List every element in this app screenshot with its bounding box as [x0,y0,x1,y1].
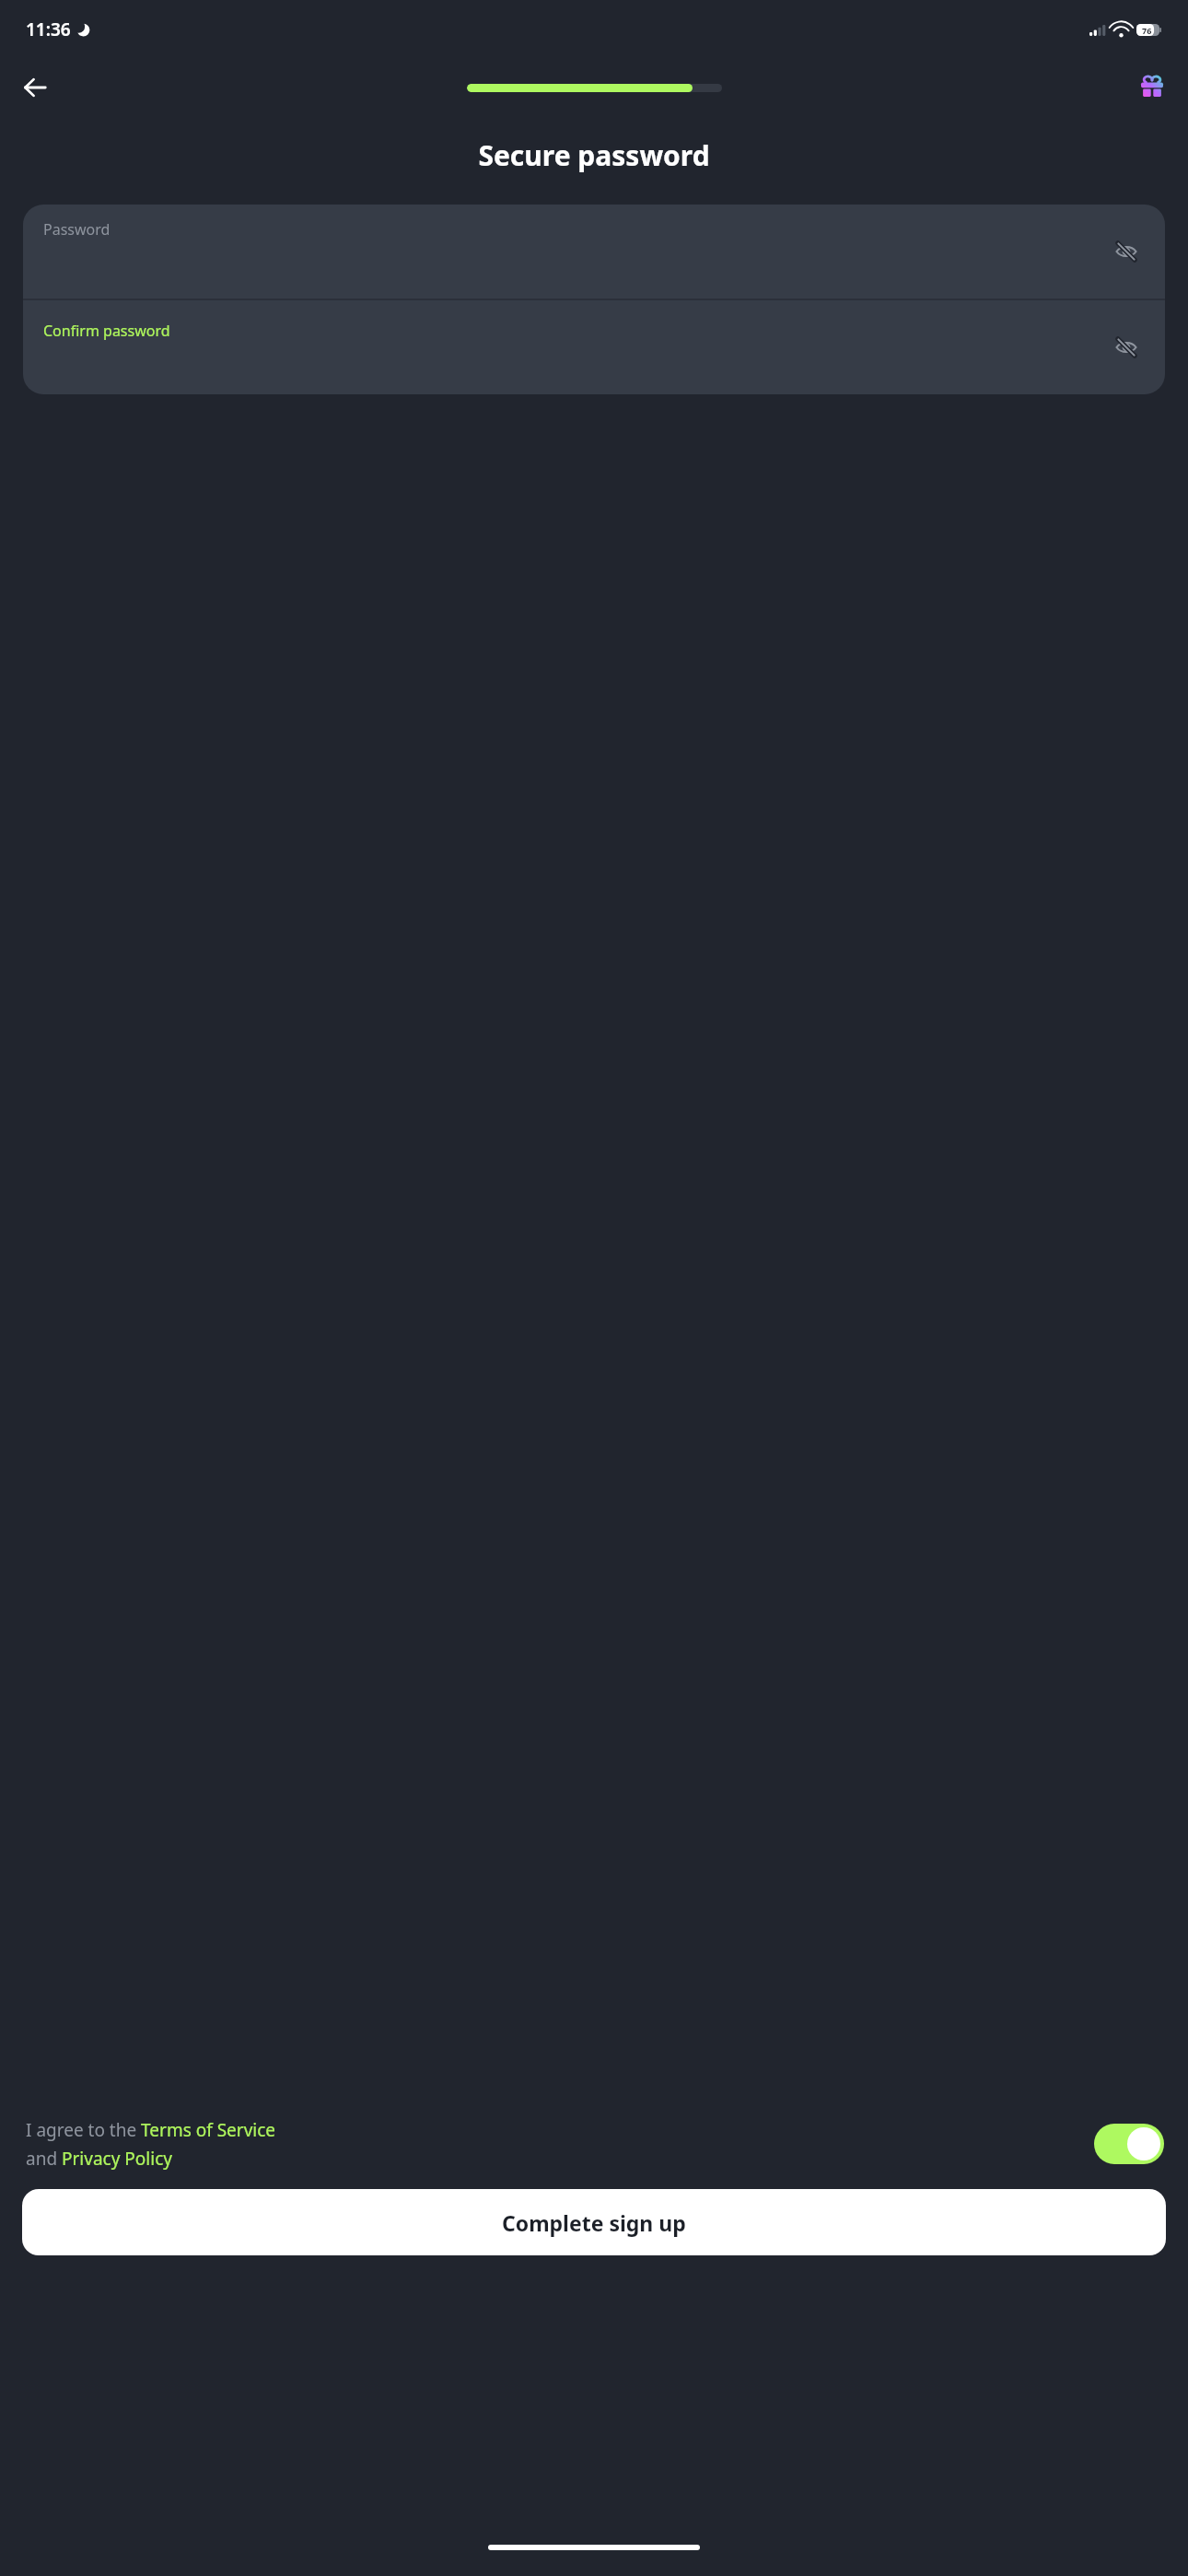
button[interactable]: Agree toggle [1094,2124,1164,2164]
button[interactable]: Gifts [1130,65,1174,110]
staticText: 76 [1142,25,1152,36]
staticText: Password [43,219,111,240]
staticText: Confirm password [43,321,170,341]
button[interactable]: Password [23,205,1165,299]
button[interactable]: I agree to the Terms of Service and Priv… [26,2118,1081,2170]
staticText: Complete sign up [502,2208,686,2237]
button[interactable]: Complete sign up [22,2189,1166,2255]
staticText: Secure password [478,136,710,174]
staticText: I agree to the Terms of Service and Priv… [26,2118,276,2170]
button[interactable]: Back [13,65,57,110]
staticText: 11:36 [26,18,71,41]
button[interactable]: Show password [1108,233,1145,270]
button[interactable]: Show password [1108,329,1145,366]
button[interactable]: Confirm password [23,300,1165,394]
